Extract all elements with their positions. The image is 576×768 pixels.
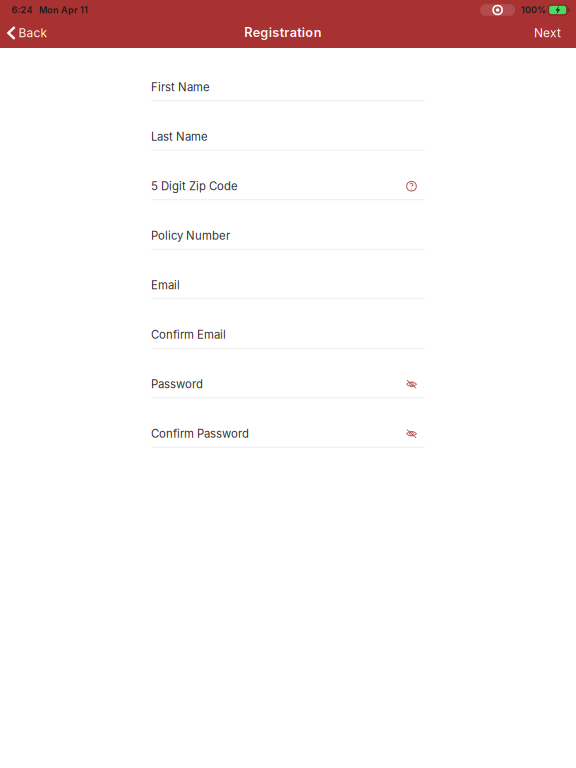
button[interactable]: 5 Digit Zip Code <box>151 151 425 200</box>
button[interactable]: Confirm Email <box>151 299 425 349</box>
staticText: First Name <box>151 80 210 94</box>
staticText: 6:24 <box>11 4 32 15</box>
button[interactable]: Back <box>1 18 55 48</box>
button[interactable]: Next <box>522 18 575 48</box>
staticText: Registration <box>244 25 322 40</box>
button[interactable]: Last Name <box>151 101 425 151</box>
staticText: Confirm Password <box>151 427 249 440</box>
staticText: Email <box>151 278 180 292</box>
staticText: 5 Digit Zip Code <box>151 179 238 193</box>
staticText: Back <box>18 26 47 40</box>
staticText: Password <box>151 377 203 391</box>
staticText: Last Name <box>151 130 208 143</box>
staticText: Policy Number <box>151 229 230 242</box>
button[interactable]: Email <box>151 250 425 299</box>
button[interactable]: Show password <box>399 376 425 392</box>
button[interactable]: First Name <box>151 52 425 101</box>
staticText: Confirm Email <box>151 328 226 341</box>
button[interactable]: Password <box>151 349 425 398</box>
button[interactable]: Policy Number <box>151 200 425 250</box>
button[interactable]: Show password <box>399 426 425 442</box>
button[interactable]: Confirm Password <box>151 398 425 448</box>
staticText: Mon Apr 11 <box>39 4 88 15</box>
button[interactable]: What is a 5 digit ZIP code? <box>399 178 425 194</box>
staticText: 100% <box>521 4 546 15</box>
staticText: Next <box>534 26 561 40</box>
